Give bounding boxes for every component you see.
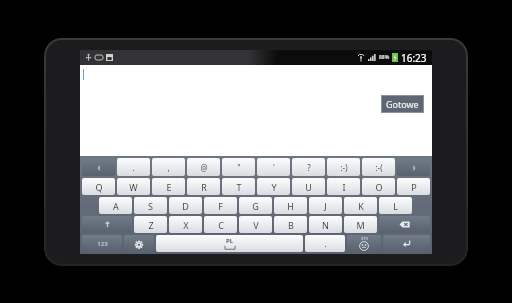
button[interactable]: U	[292, 178, 325, 195]
button[interactable]: PL	[156, 235, 303, 252]
button[interactable]: :-(	[362, 158, 395, 176]
staticText: J	[324, 200, 327, 212]
staticText: XT9	[361, 236, 368, 241]
staticText: ›	[412, 160, 416, 174]
staticText: :-(	[375, 162, 383, 173]
staticText: D	[182, 200, 189, 212]
button[interactable]: L	[379, 197, 412, 214]
button[interactable]: .	[117, 158, 150, 176]
button[interactable]: Numbers	[82, 235, 122, 252]
staticText: H	[287, 200, 294, 212]
button[interactable]: E	[152, 178, 185, 195]
button[interactable]: Shift	[82, 216, 132, 233]
staticText: I	[342, 181, 346, 193]
staticText: B	[288, 219, 294, 231]
staticText: T	[236, 181, 242, 193]
button[interactable]: W	[117, 178, 150, 195]
button[interactable]: X	[169, 216, 202, 233]
button[interactable]: G	[239, 197, 272, 214]
button[interactable]: "	[222, 158, 255, 176]
button[interactable]: F	[204, 197, 237, 214]
staticText: G	[252, 200, 259, 212]
button[interactable]: P	[397, 178, 430, 195]
staticText: L	[393, 200, 398, 212]
staticText: 16:23	[401, 51, 427, 65]
staticText: E	[166, 181, 172, 193]
staticText: C	[218, 219, 224, 231]
button[interactable]: N	[309, 216, 342, 233]
button[interactable]: Backspace	[379, 216, 430, 233]
button[interactable]: D	[169, 197, 202, 214]
button[interactable]: T	[222, 178, 255, 195]
button[interactable]: Y	[257, 178, 290, 195]
staticText: P	[411, 181, 417, 193]
staticText: M	[356, 219, 365, 231]
button[interactable]: M	[344, 216, 377, 233]
button[interactable]: J	[309, 197, 342, 214]
button[interactable]: R	[187, 178, 220, 195]
button[interactable]: Settings	[124, 235, 154, 252]
staticText: .	[132, 162, 135, 173]
staticText: S	[148, 200, 153, 212]
staticText: R	[201, 181, 207, 193]
button[interactable]: Gotowe	[381, 95, 424, 113]
staticText: ‹	[97, 160, 101, 174]
button[interactable]: Next	[397, 158, 430, 176]
staticText: Q	[95, 181, 103, 193]
staticText: ,	[167, 162, 170, 173]
button[interactable]: Enter	[383, 235, 430, 252]
button[interactable]: O	[362, 178, 395, 195]
staticText: PL	[226, 237, 234, 245]
button[interactable]: K	[344, 197, 377, 214]
staticText: O	[375, 181, 383, 193]
button[interactable]: ?	[292, 158, 325, 176]
staticText: V	[253, 219, 259, 231]
button[interactable]: Emoji	[347, 235, 381, 252]
staticText: F	[218, 200, 223, 212]
staticText: W	[129, 181, 138, 193]
button[interactable]: B	[274, 216, 307, 233]
button[interactable]: V	[239, 216, 272, 233]
staticText: Z	[148, 219, 154, 231]
staticText: Y	[271, 181, 277, 193]
button[interactable]: S	[134, 197, 167, 214]
staticText: Gotowe	[386, 98, 419, 110]
button[interactable]: .	[305, 235, 345, 252]
button[interactable]: C	[204, 216, 237, 233]
button[interactable]: Q	[82, 178, 115, 195]
button[interactable]: Previous	[82, 158, 115, 176]
button[interactable]: '	[257, 158, 290, 176]
staticText: ?	[307, 162, 311, 173]
staticText: N	[322, 219, 329, 231]
button[interactable]: @	[187, 158, 220, 176]
staticText: .	[324, 238, 327, 249]
staticText: 88%	[379, 54, 390, 61]
button[interactable]: I	[327, 178, 360, 195]
staticText: "	[237, 162, 241, 173]
button[interactable]: ,	[152, 158, 185, 176]
staticText: U	[305, 181, 312, 193]
staticText: @	[200, 162, 208, 173]
staticText: X	[183, 219, 189, 231]
button[interactable]: Z	[134, 216, 167, 233]
staticText: 123	[97, 240, 108, 248]
button[interactable]: A	[99, 197, 132, 214]
button[interactable]: H	[274, 197, 307, 214]
staticText: :-)	[340, 162, 348, 173]
staticText: K	[358, 200, 364, 212]
staticText: A	[113, 200, 119, 212]
button[interactable]: :-)	[327, 158, 360, 176]
staticText: '	[273, 162, 275, 173]
